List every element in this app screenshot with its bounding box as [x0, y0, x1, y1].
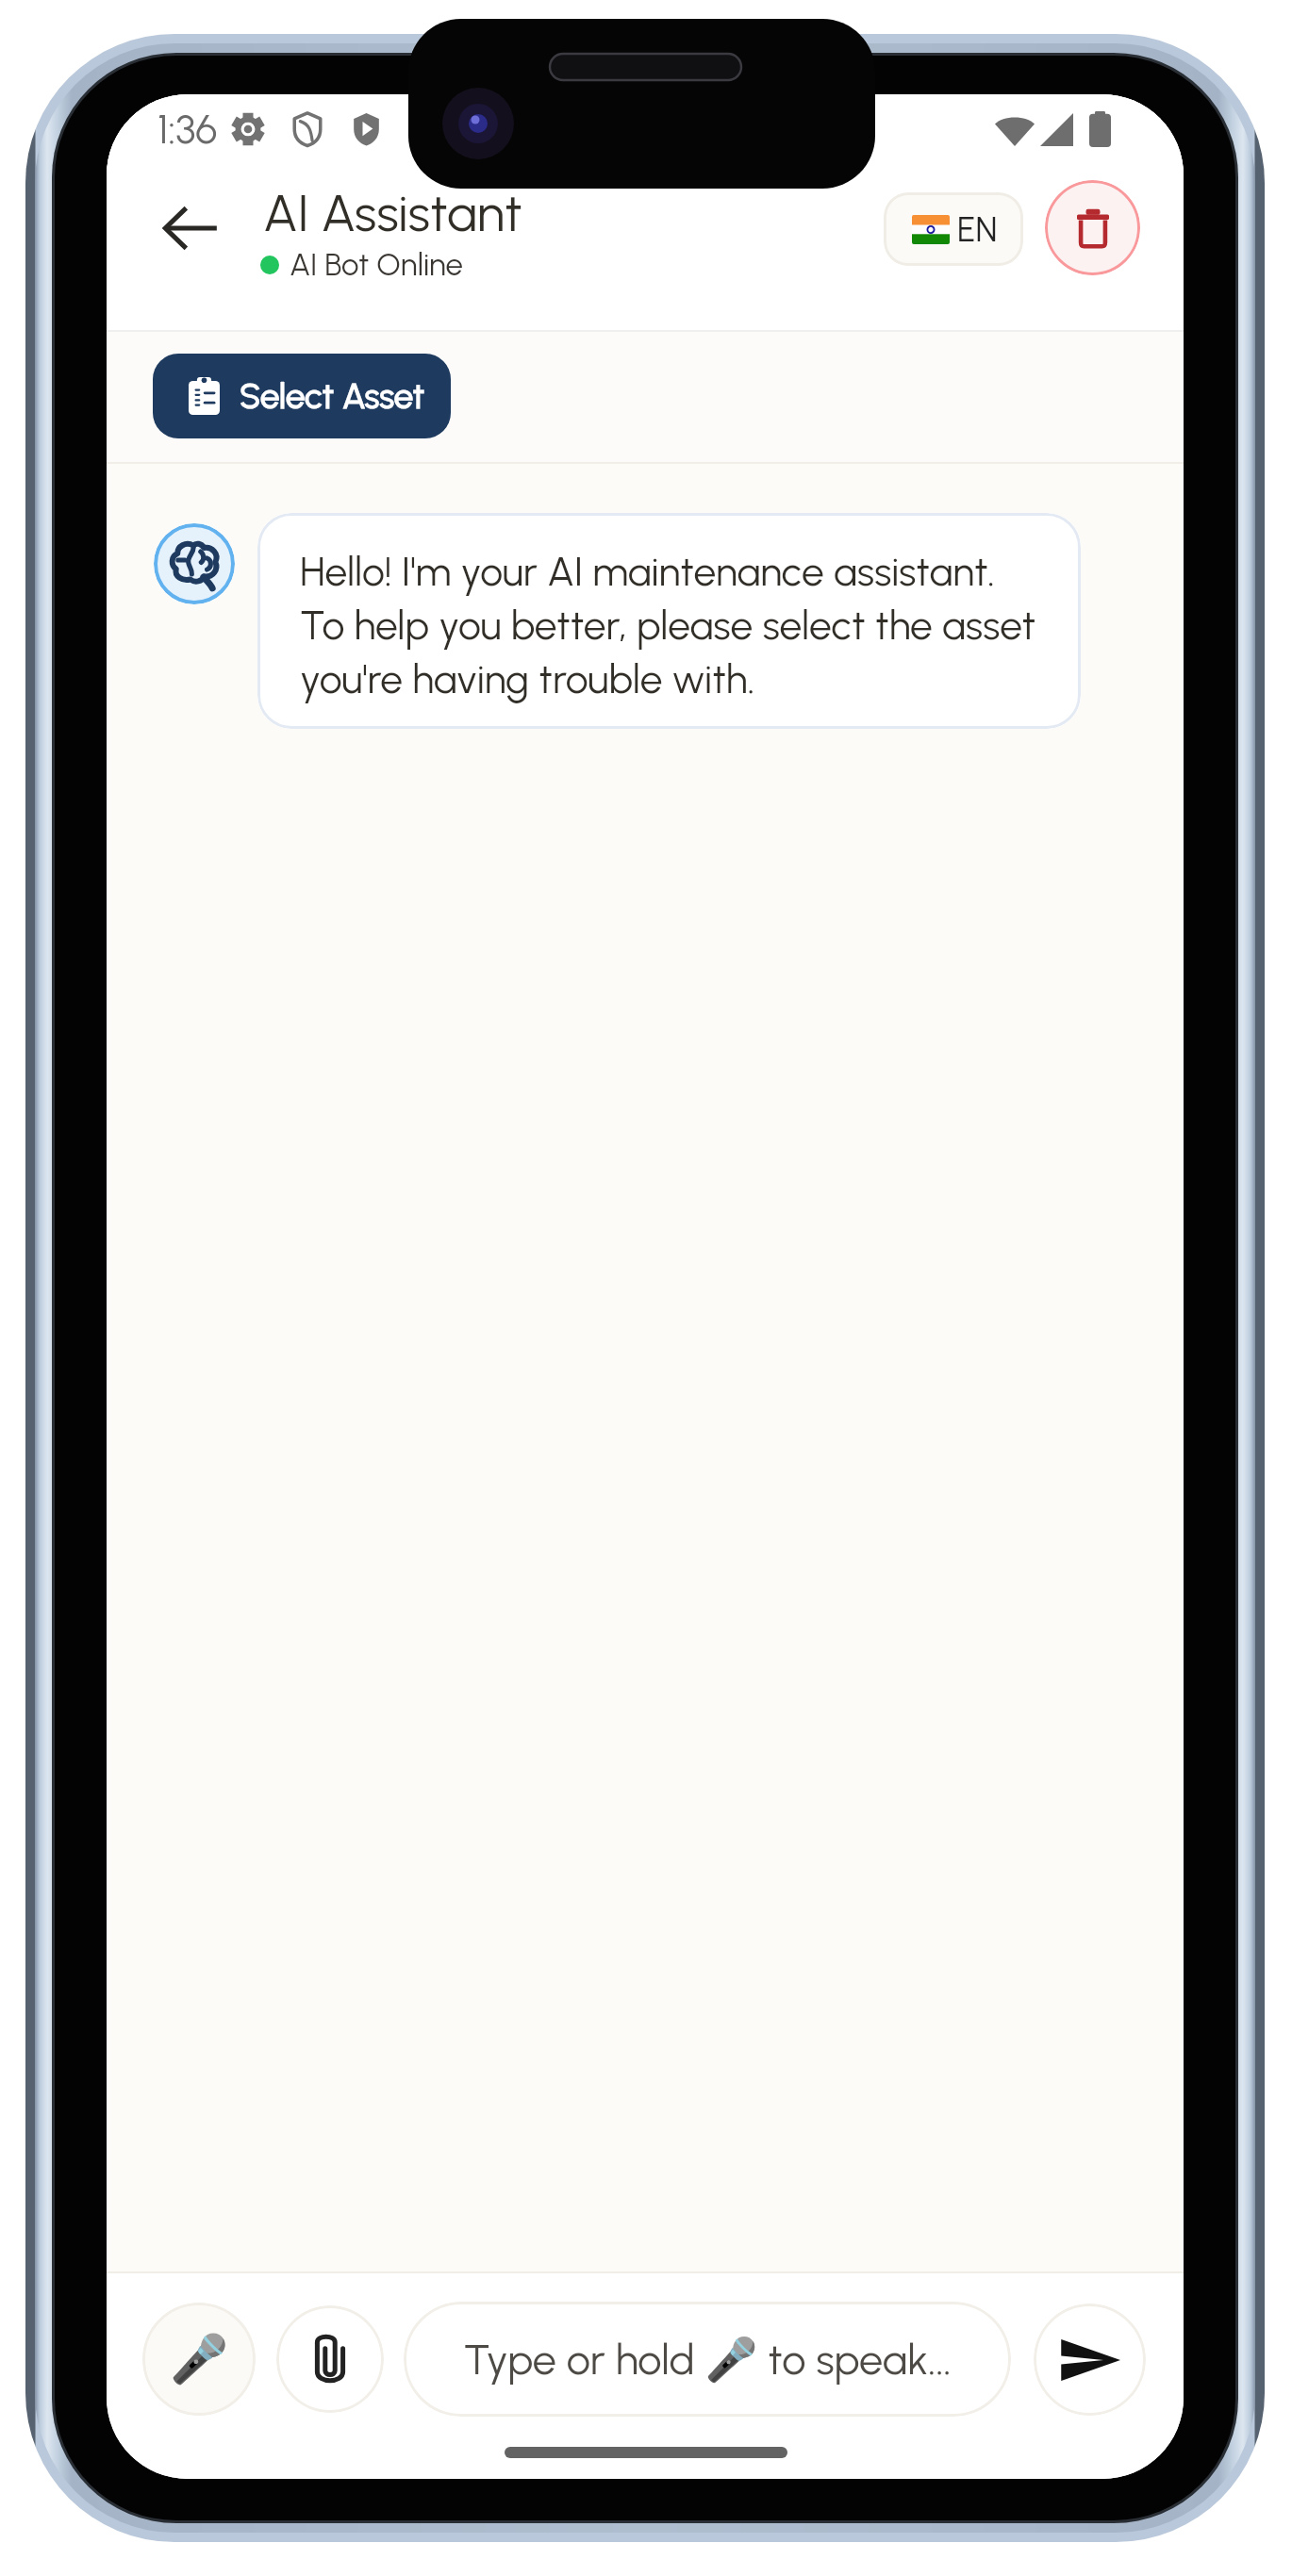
button[interactable]: Hold to speak — [142, 2303, 256, 2416]
button[interactable]: Attach file — [276, 2305, 384, 2413]
staticText: EN — [957, 209, 998, 250]
button[interactable]: Select Asset — [153, 354, 451, 438]
staticText: AI Assistant — [263, 182, 522, 243]
button[interactable]: EN — [884, 192, 1023, 266]
staticText: Select Asset — [240, 375, 425, 417]
button[interactable]: Send — [1034, 2304, 1146, 2416]
staticText: AI Bot Online — [290, 246, 463, 284]
button[interactable]: Delete conversation — [1045, 180, 1140, 275]
button[interactable]: Type or hold 🎤 to speak... — [404, 2302, 1011, 2417]
staticText: 1:36 — [157, 105, 218, 154]
staticText: Type or hold 🎤 to speak... — [463, 2334, 952, 2385]
button[interactable]: Back — [145, 183, 236, 273]
staticText: 🎤 — [170, 2332, 229, 2387]
staticText: Hello! I'm your AI maintenance assistant… — [300, 548, 1036, 703]
